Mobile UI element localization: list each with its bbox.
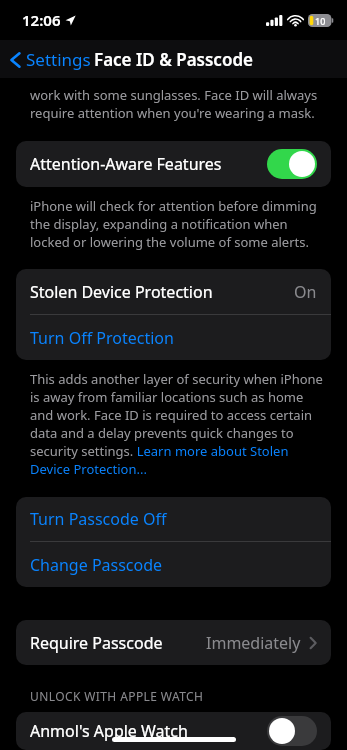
staticText: Require Passcode bbox=[30, 632, 163, 654]
staticText: 12:06 bbox=[22, 10, 61, 30]
button[interactable]: Attention-Aware Features bbox=[16, 141, 331, 187]
button[interactable]: Switch off bbox=[267, 716, 317, 746]
button[interactable]: Turn Passcode Off bbox=[16, 497, 331, 541]
staticText: Immediately bbox=[206, 632, 301, 654]
button[interactable]: Anmol's Apple Watch bbox=[16, 712, 331, 750]
button[interactable]: Settings bbox=[6, 43, 95, 76]
staticText: Change Passcode bbox=[30, 554, 163, 576]
button[interactable]: Turn Off Protection bbox=[16, 315, 331, 360]
staticText: 10 bbox=[315, 15, 326, 27]
staticText: Settings bbox=[26, 48, 91, 71]
staticText: This adds another layer of security when… bbox=[30, 370, 325, 478]
button[interactable]: Switch on bbox=[267, 149, 317, 179]
staticText: UNLOCK WITH APPLE WATCH bbox=[30, 688, 204, 704]
staticText: On bbox=[294, 281, 317, 303]
staticText: Turn Off Protection bbox=[30, 327, 174, 349]
staticText: iPhone will check for attention before d… bbox=[30, 197, 325, 251]
button[interactable]: Change Passcode bbox=[16, 542, 331, 587]
staticText: work with some sunglasses. Face ID will … bbox=[30, 86, 325, 122]
staticText: Stolen Device Protection bbox=[30, 281, 213, 303]
staticText: Attention-Aware Features bbox=[30, 153, 222, 175]
staticText: Anmol's Apple Watch bbox=[30, 720, 188, 742]
staticText: Face ID & Passcode bbox=[94, 48, 253, 71]
button[interactable]: Stolen Device Protection bbox=[16, 269, 331, 314]
button[interactable]: Require Passcode bbox=[16, 620, 331, 665]
staticText: Turn Passcode Off bbox=[30, 508, 167, 530]
